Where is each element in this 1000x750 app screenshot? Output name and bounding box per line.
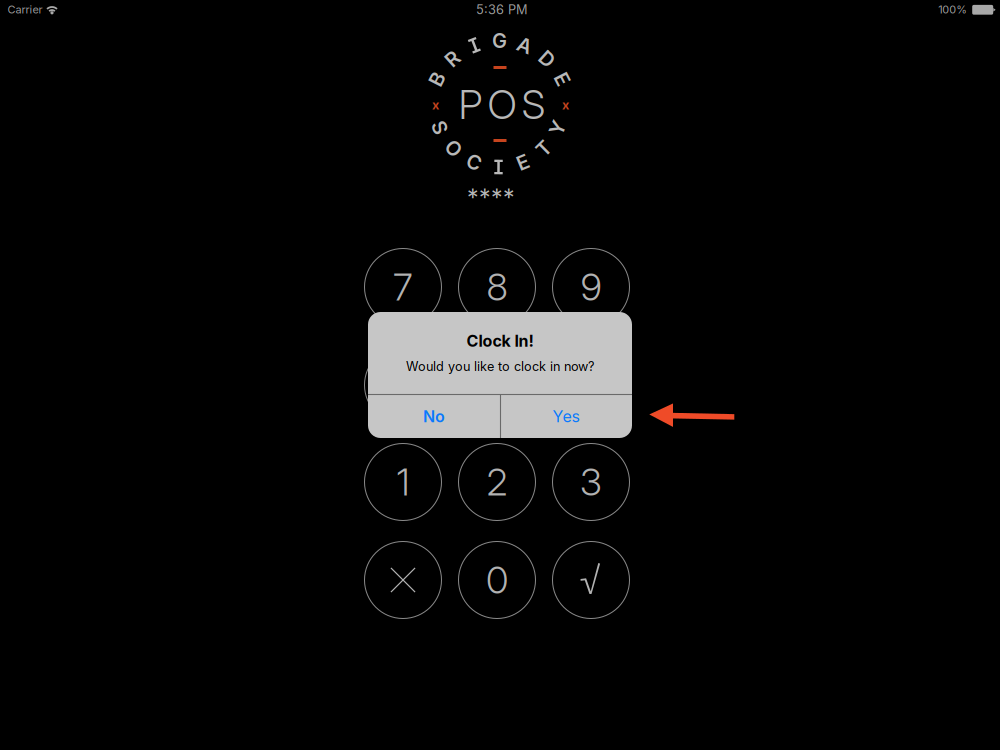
button[interactable]: 8 bbox=[458, 248, 535, 325]
button[interactable]: 3 bbox=[552, 443, 629, 520]
staticText: No bbox=[423, 407, 445, 426]
staticText: Would you like to clock in now? bbox=[406, 359, 594, 374]
staticText: 5 bbox=[486, 362, 507, 408]
staticText: S bbox=[433, 115, 446, 140]
staticText: A bbox=[517, 33, 532, 57]
staticText: B bbox=[430, 67, 443, 91]
button[interactable]: Delete bbox=[364, 541, 441, 618]
staticText: 9 bbox=[580, 264, 601, 310]
button[interactable]: 0 bbox=[458, 541, 535, 618]
staticText: POS bbox=[458, 80, 545, 129]
staticText: Carrier bbox=[7, 3, 42, 16]
button[interactable]: No bbox=[368, 395, 499, 438]
button[interactable]: 9 bbox=[552, 248, 629, 325]
staticText: 3 bbox=[580, 459, 602, 505]
button[interactable]: 2 bbox=[458, 443, 535, 520]
staticText: G bbox=[492, 28, 507, 53]
staticText: 5:36 PM bbox=[476, 2, 528, 17]
staticText: 0 bbox=[486, 557, 508, 603]
staticText: E bbox=[517, 150, 529, 174]
button[interactable]: 6 bbox=[552, 346, 629, 423]
staticText: 7 bbox=[393, 264, 413, 310]
staticText: x bbox=[432, 97, 439, 112]
staticText: D bbox=[540, 47, 554, 71]
button[interactable]: 5 bbox=[458, 346, 535, 423]
staticText: C bbox=[467, 150, 482, 174]
staticText: Yes bbox=[552, 407, 579, 426]
staticText: 8 bbox=[486, 264, 507, 310]
staticText: Y bbox=[551, 116, 565, 140]
staticText: 6 bbox=[580, 362, 601, 408]
staticText: **** bbox=[467, 183, 515, 211]
button[interactable]: 4 bbox=[364, 346, 441, 423]
staticText: 100% bbox=[938, 3, 967, 16]
button[interactable]: Yes bbox=[500, 395, 631, 438]
staticText: O bbox=[446, 136, 461, 160]
staticText: 2 bbox=[486, 459, 507, 505]
staticText: T bbox=[537, 136, 550, 161]
staticText: x bbox=[562, 97, 569, 112]
staticText: 1 bbox=[396, 459, 409, 505]
button[interactable]: Enter bbox=[552, 541, 629, 618]
staticText: 4 bbox=[391, 362, 414, 408]
staticText: Clock In! bbox=[466, 331, 533, 351]
staticText: E bbox=[556, 67, 568, 91]
button[interactable]: 7 bbox=[364, 248, 441, 325]
button[interactable]: 1 bbox=[364, 443, 441, 520]
staticText: R bbox=[446, 47, 459, 71]
